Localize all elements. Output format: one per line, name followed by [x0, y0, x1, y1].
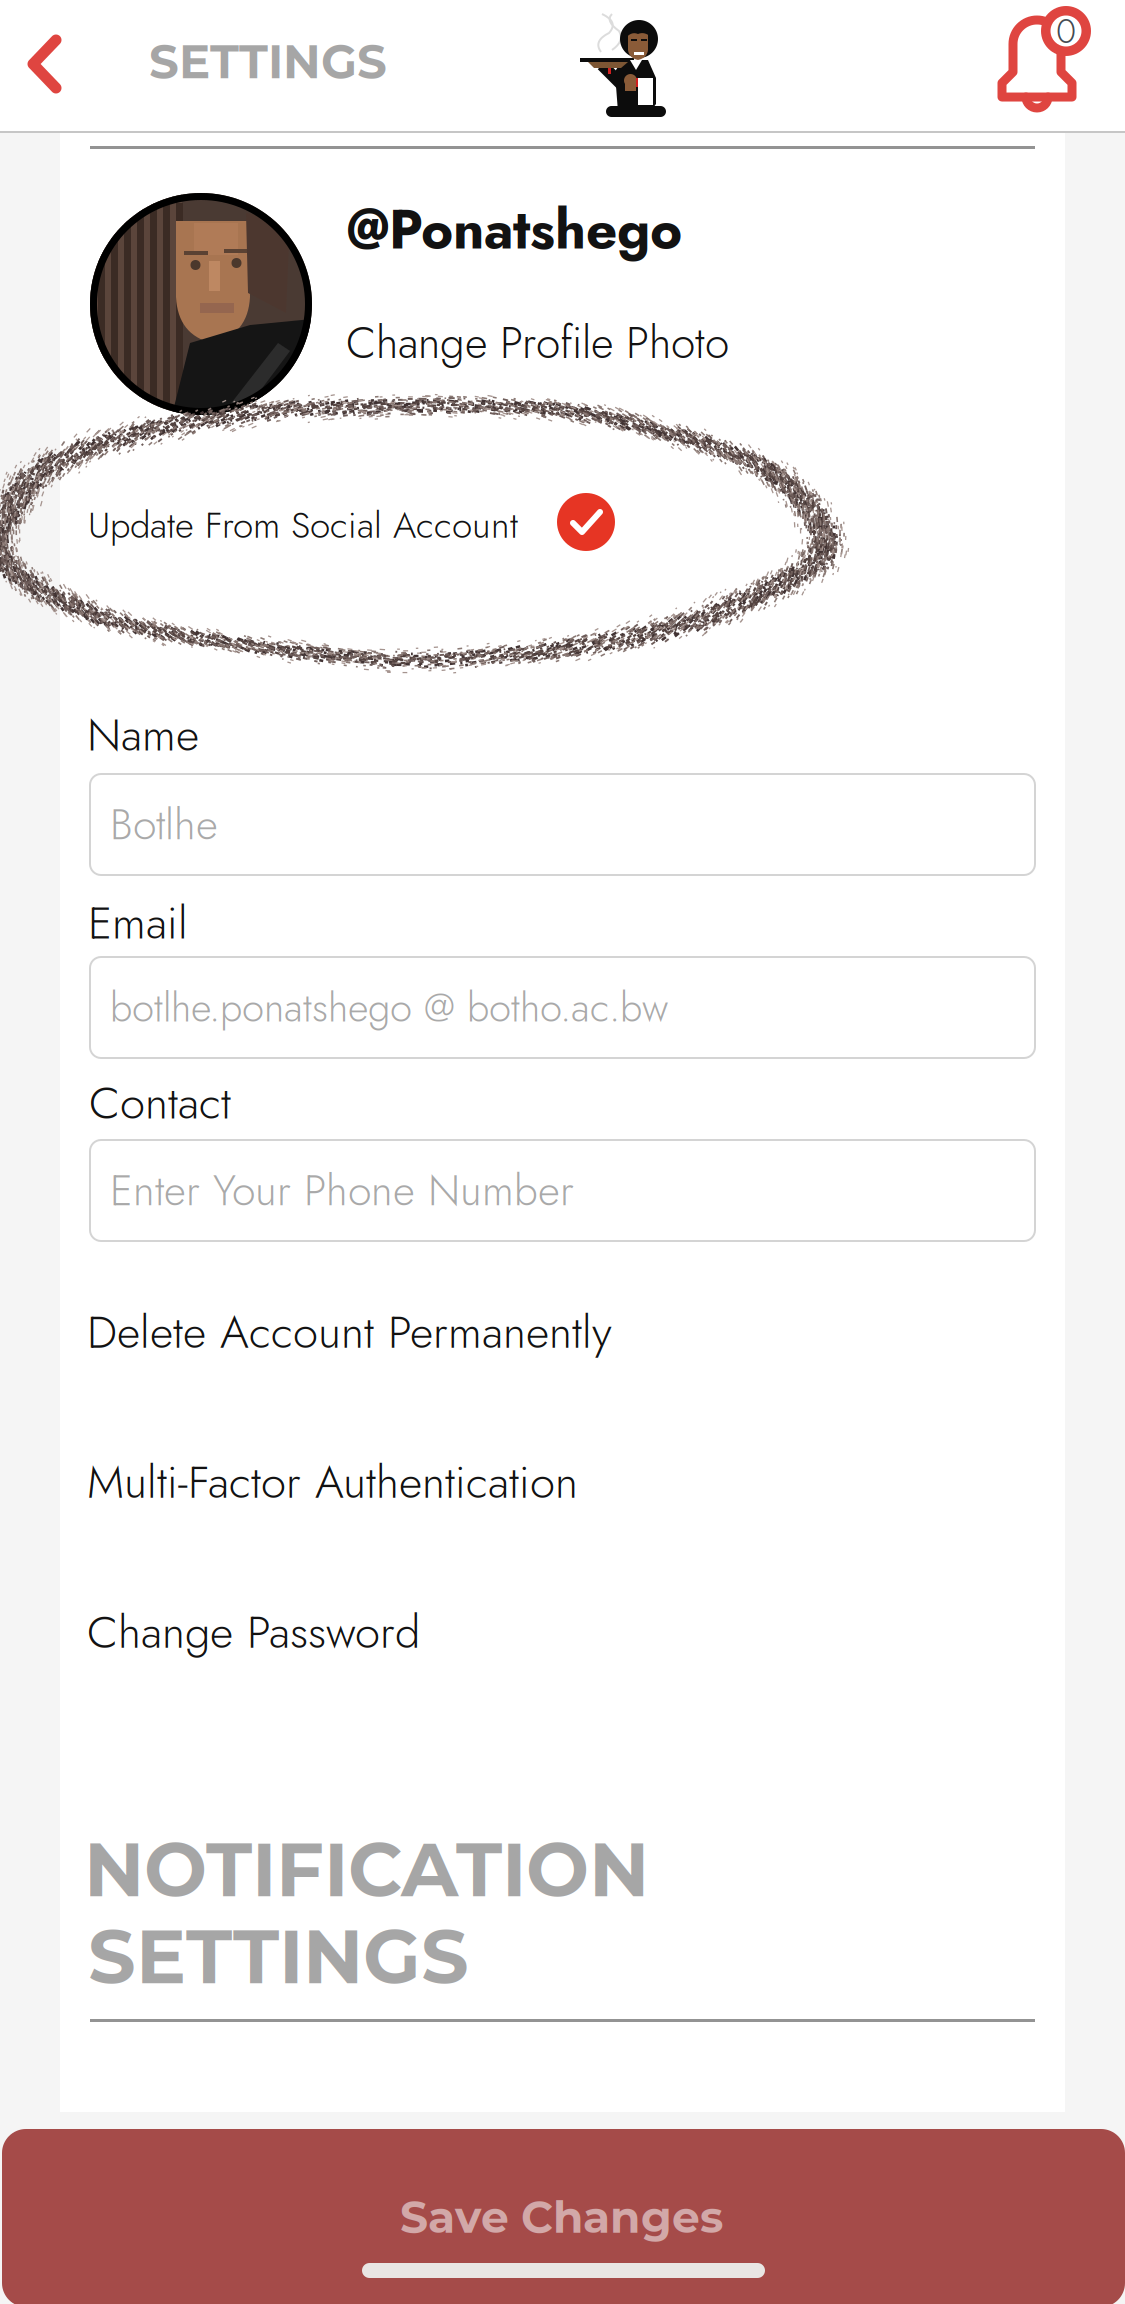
staticText: @Ponatshego	[347, 190, 682, 269]
staticText: Botlhe	[110, 794, 218, 855]
staticText: SETTINGS	[88, 1911, 469, 2002]
staticText: 0	[1056, 6, 1076, 56]
staticText: Save Changes	[400, 2190, 723, 2244]
staticText: Enter Your Phone Number	[110, 1160, 574, 1221]
staticText: SETTINGS	[149, 33, 387, 90]
staticText: Email	[88, 890, 188, 955]
button[interactable]: botlhe.ponatshego @ botho.ac.bw	[90, 957, 1035, 1058]
staticText: Change Profile Photo	[346, 311, 729, 375]
button[interactable]: Enter Your Phone Number	[90, 1140, 1035, 1241]
button[interactable]: Update From Social Account	[88, 491, 615, 553]
staticText: Multi-Factor Authentication	[87, 1449, 578, 1515]
staticText: Update From Social Account	[88, 498, 518, 551]
button[interactable]: Delete Account Permanently	[87, 1286, 1032, 1378]
staticText: Delete Account Permanently	[87, 1299, 612, 1365]
button[interactable]: Change Profile Photo	[346, 311, 729, 375]
button[interactable]: Change Password	[87, 1586, 1032, 1678]
staticText: botlhe.ponatshego @ botho.ac.bw	[110, 979, 668, 1036]
button[interactable]: Multi-Factor Authentication	[87, 1436, 1032, 1528]
staticText: Contact	[89, 1070, 231, 1135]
staticText: Name	[87, 702, 199, 767]
button[interactable]: Botlhe	[90, 774, 1035, 875]
staticText: NOTIFICATION	[84, 1824, 649, 1915]
button[interactable]: Notifications	[997, 6, 1107, 116]
button[interactable]: Save Changes	[2, 2129, 1125, 2304]
staticText: Change Password	[87, 1599, 420, 1665]
button[interactable]: Back	[26, 36, 63, 92]
